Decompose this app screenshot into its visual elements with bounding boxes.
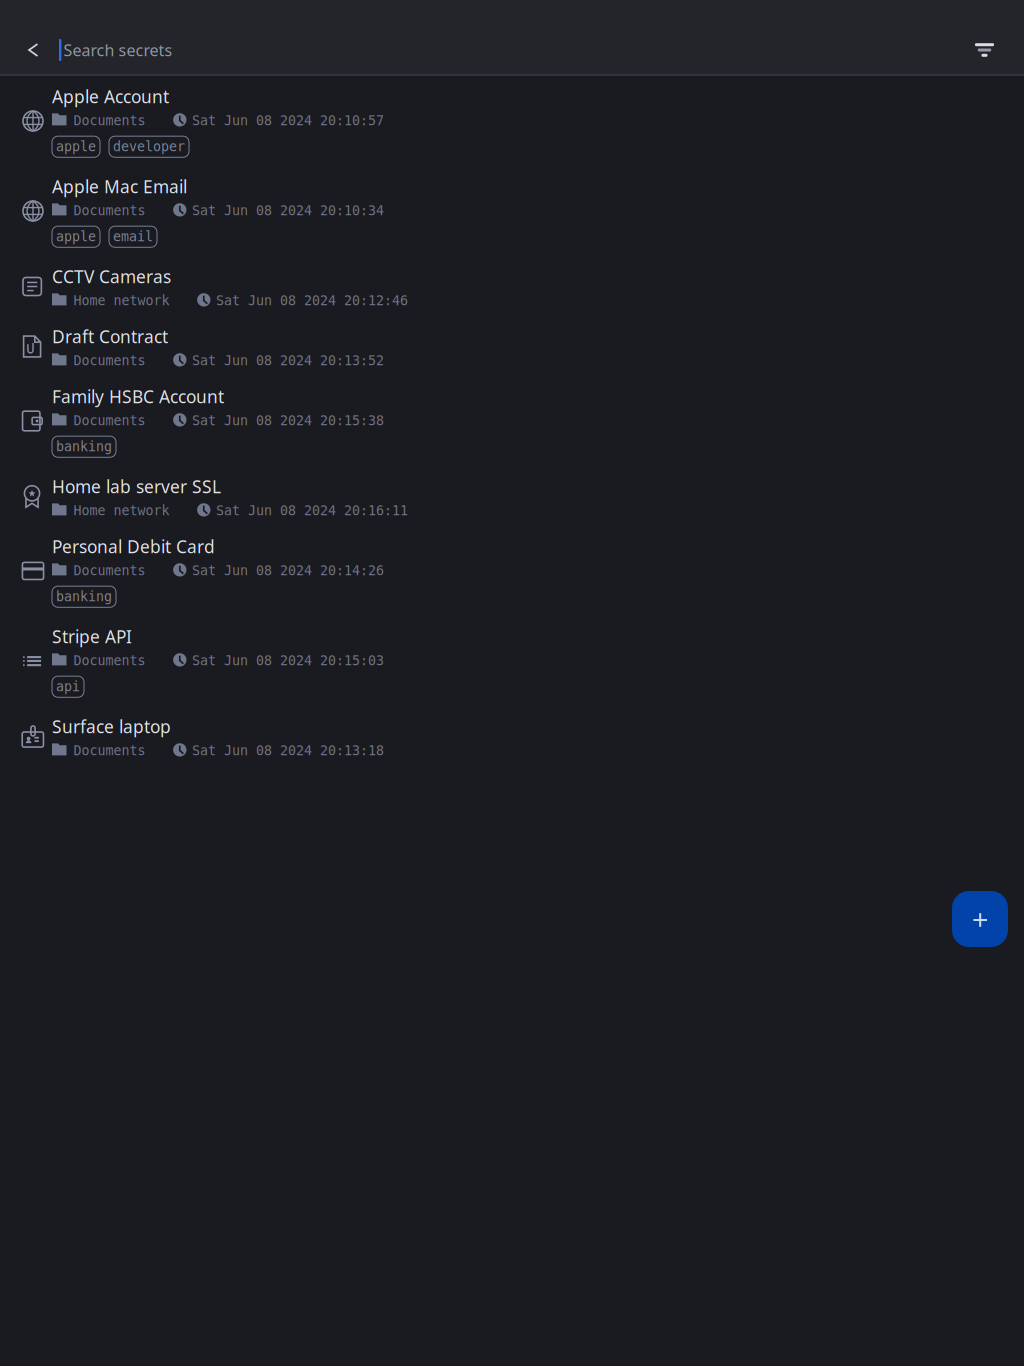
staticText: Stripe API (52, 625, 132, 648)
staticText: email (113, 229, 153, 244)
staticText: Sat Jun 08 2024 20:13:18 (192, 743, 384, 758)
button[interactable]: Filter (955, 26, 1024, 74)
button[interactable]: Home lab server SSL (0, 467, 1024, 527)
staticText: developer (113, 139, 185, 154)
staticText: apple (56, 229, 96, 244)
button[interactable]: Family HSBC Account (0, 377, 1024, 467)
staticText: Documents (73, 113, 145, 128)
button[interactable]: Apple Account (0, 77, 1024, 167)
staticText: Documents (73, 203, 145, 218)
staticText: CCTV Cameras (52, 265, 171, 288)
staticText: Personal Debit Card (52, 535, 215, 558)
staticText: apple (56, 139, 96, 154)
staticText: Apple Mac Email (52, 175, 187, 198)
staticText: banking (56, 589, 112, 604)
staticText: Sat Jun 08 2024 20:10:34 (192, 203, 384, 218)
staticText: Documents (73, 353, 145, 368)
staticText: Draft Contract (52, 325, 168, 348)
staticText: Documents (73, 563, 145, 578)
staticText: Surface laptop (52, 715, 171, 738)
staticText: Apple Account (52, 85, 169, 108)
button[interactable]: Add secret (952, 891, 1008, 947)
staticText: Home lab server SSL (52, 475, 221, 498)
button[interactable]: Stripe API (0, 617, 1024, 707)
staticText: api (56, 679, 80, 694)
staticText: Sat Jun 08 2024 20:12:46 (216, 293, 408, 308)
staticText: Sat Jun 08 2024 20:14:26 (192, 563, 384, 578)
staticText: Documents (73, 743, 145, 758)
staticText: Documents (73, 413, 145, 428)
staticText: Search secrets (63, 39, 172, 61)
button[interactable]: Back (0, 26, 59, 74)
staticText: Sat Jun 08 2024 20:13:52 (192, 353, 384, 368)
staticText: Family HSBC Account (52, 385, 224, 408)
button[interactable]: CCTV Cameras (0, 257, 1024, 317)
button[interactable]: Personal Debit Card (0, 527, 1024, 617)
button[interactable]: Surface laptop (0, 707, 1024, 767)
staticText: banking (56, 439, 112, 454)
button[interactable]: Apple Mac Email (0, 167, 1024, 257)
staticText: Sat Jun 08 2024 20:15:38 (192, 413, 384, 428)
staticText: Sat Jun 08 2024 20:15:03 (192, 653, 384, 668)
staticText: Home network (73, 503, 169, 518)
button[interactable]: Draft Contract (0, 317, 1024, 377)
staticText: Home network (73, 293, 169, 308)
staticText: Documents (73, 653, 145, 668)
staticText: Sat Jun 08 2024 20:10:57 (192, 113, 384, 128)
staticText: Sat Jun 08 2024 20:16:11 (216, 503, 408, 518)
